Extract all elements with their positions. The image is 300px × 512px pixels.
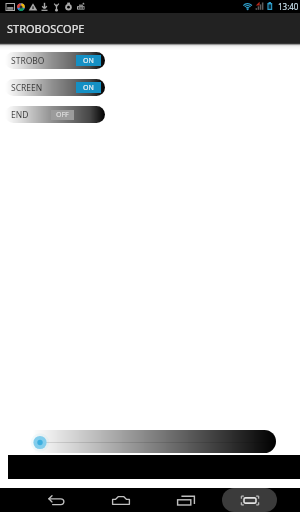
button[interactable]: STROBO bbox=[5, 52, 105, 69]
button[interactable] bbox=[8, 430, 276, 453]
staticText: 13:40 bbox=[278, 1, 299, 12]
staticText: ON bbox=[83, 83, 94, 93]
button[interactable]: END bbox=[5, 106, 105, 123]
button[interactable]: SCREEN bbox=[5, 79, 105, 96]
button[interactable]: Recents bbox=[164, 488, 208, 512]
staticText: SCREEN bbox=[11, 82, 43, 94]
staticText: STROBOSCOPE bbox=[7, 21, 85, 36]
staticText: STROBO bbox=[11, 55, 45, 67]
staticText: OFF bbox=[56, 110, 69, 120]
button[interactable]: Fullscreen bbox=[228, 488, 272, 512]
button[interactable]: Home bbox=[99, 488, 143, 512]
button[interactable]: Back bbox=[35, 488, 79, 512]
staticText: END bbox=[11, 109, 29, 121]
staticText: ON bbox=[83, 56, 94, 66]
